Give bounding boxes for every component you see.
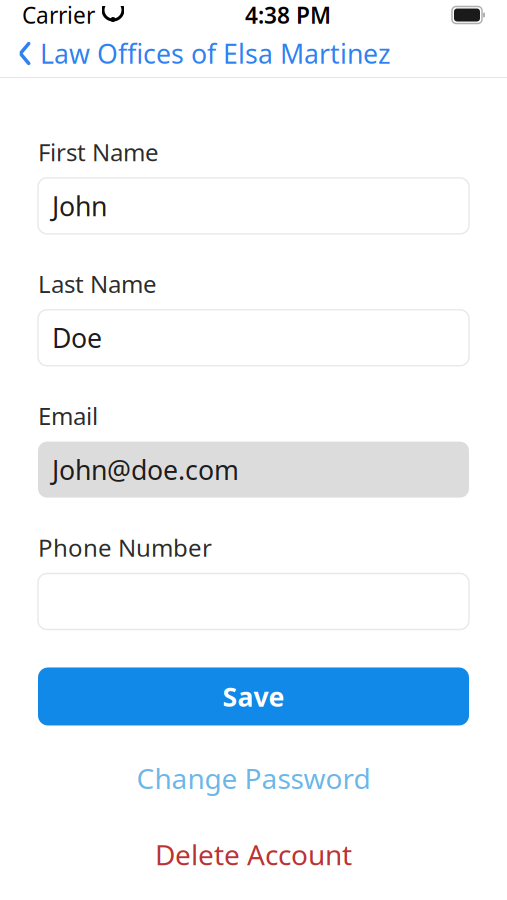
staticText: Last Name bbox=[38, 268, 157, 300]
staticText: John@doe.com bbox=[52, 452, 239, 487]
staticText: First Name bbox=[38, 136, 159, 168]
staticText: Delete Account bbox=[155, 836, 352, 873]
staticText: Doe bbox=[52, 320, 102, 355]
button[interactable]: Delete Account bbox=[131, 827, 376, 882]
staticText: Carrier bbox=[22, 0, 95, 30]
staticText: Phone Number bbox=[38, 532, 212, 563]
staticText: 4:38 PM bbox=[245, 0, 331, 30]
staticText: Law Offices of Elsa Martinez bbox=[40, 36, 391, 71]
staticText: Save bbox=[222, 679, 284, 714]
button[interactable]: Law Offices of Elsa Martinez bbox=[0, 30, 401, 77]
button[interactable]: Save bbox=[38, 667, 469, 725]
staticText: Change Password bbox=[136, 759, 370, 797]
staticText: John bbox=[52, 188, 107, 224]
staticText: Email bbox=[38, 400, 98, 432]
button[interactable]: Change Password bbox=[112, 750, 394, 806]
